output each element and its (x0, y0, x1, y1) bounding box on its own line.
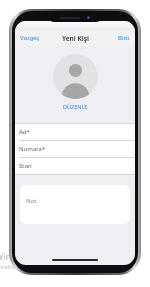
button[interactable]: İban (15, 158, 135, 174)
staticText: Windows'u etkinleştirmek için Ayarlar'a … (0, 263, 123, 271)
staticText: İban (19, 162, 32, 170)
button[interactable]: DÜZENLE (60, 102, 91, 111)
staticText: Yeni Kişi (62, 34, 89, 43)
button[interactable]: Numara* (15, 141, 135, 157)
staticText: Not (26, 197, 37, 205)
staticText: Windows'u Etkinleştir (0, 250, 86, 262)
staticText: DÜZENLE (63, 103, 88, 110)
button[interactable]: Vazgeç (17, 31, 43, 45)
staticText: Numara* (19, 145, 46, 153)
button[interactable]: Edit contact photo (53, 54, 98, 99)
button[interactable]: Not (20, 185, 130, 224)
staticText: Bitti (118, 34, 130, 42)
staticText: Vazgeç (20, 34, 40, 42)
button[interactable]: Bitti (115, 31, 133, 45)
button[interactable]: Ad* (15, 124, 135, 140)
staticText: Ad* (19, 128, 30, 136)
